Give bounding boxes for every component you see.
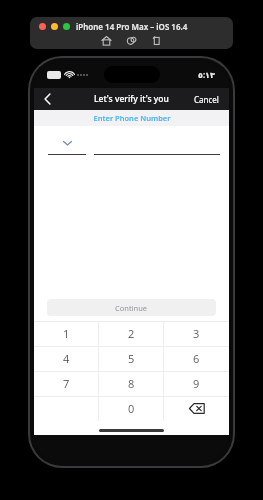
staticText: 0 [128,401,135,416]
button[interactable]: Minimize [51,23,58,30]
button[interactable] [47,140,87,170]
staticText: Enter Phone Number [93,113,171,123]
staticText: Cancel [194,94,219,105]
button[interactable]: 4 [34,346,99,371]
button[interactable]: 3 [164,321,229,346]
button[interactable]: Back [34,88,60,110]
staticText: Let's verify it's you [94,93,169,105]
button[interactable]: 1 [34,321,99,346]
staticText: ٥:١٣ [198,69,215,80]
button[interactable] [34,396,99,421]
button[interactable]: Delete [164,396,229,421]
staticText: 4 [63,351,70,366]
staticText: 5 [128,351,135,366]
staticText: 1 [63,326,70,341]
button[interactable]: 9 [164,371,229,396]
button[interactable]: Close [39,23,46,30]
button[interactable]: Rotate [151,35,162,46]
button[interactable]: Home [101,35,112,46]
button[interactable]: Screenshot [126,35,137,46]
button[interactable]: Cancel [194,94,219,105]
staticText: 2 [128,326,135,341]
button[interactable] [94,140,224,170]
staticText: 8 [128,376,135,391]
button[interactable]: 7 [34,371,99,396]
button[interactable]: Continue [47,299,216,316]
staticText: iPhone 14 Pro Max – iOS 16.4 [76,21,188,32]
button[interactable]: 8 [99,371,164,396]
staticText: Continue [115,303,148,313]
staticText: 6 [193,351,200,366]
staticText: 7 [63,376,70,391]
staticText: 3 [193,326,200,341]
button[interactable]: 6 [164,346,229,371]
button[interactable]: Zoom [63,23,70,30]
button[interactable]: 5 [99,346,164,371]
button[interactable]: 2 [99,321,164,346]
staticText: 9 [193,376,200,391]
button[interactable]: 0 [99,396,164,421]
